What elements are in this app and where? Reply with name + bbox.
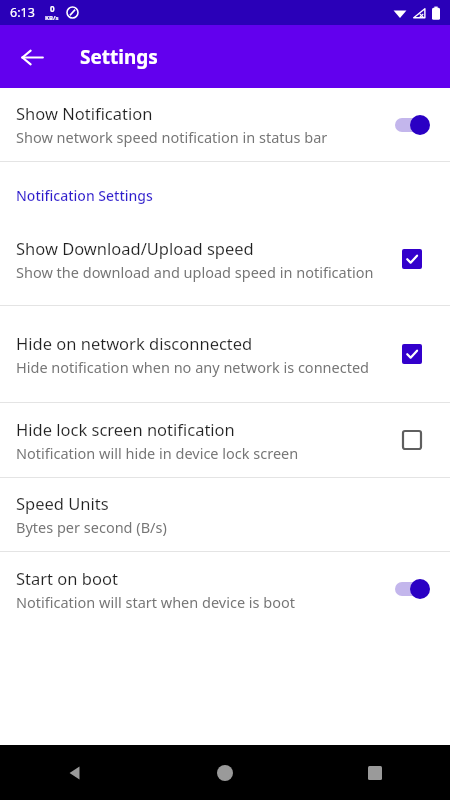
staticText: Notification Settings — [16, 186, 153, 205]
other: Checked — [402, 249, 422, 269]
button[interactable]: Speed Units — [0, 478, 450, 551]
button[interactable]: Home — [150, 745, 300, 800]
staticText: Show network speed notification in statu… — [16, 127, 328, 147]
staticText: 0 — [50, 3, 55, 14]
button[interactable]: Hide on network disconnected — [0, 306, 450, 402]
staticText: 6:13 — [10, 4, 35, 21]
button[interactable]: Show Download/Upload speed — [0, 213, 450, 305]
button[interactable]: Back — [0, 745, 150, 800]
other: Checked — [402, 344, 422, 364]
staticText: Hide lock screen notification — [16, 418, 235, 440]
other: Unchecked — [402, 430, 422, 450]
staticText: Hide on network disconnected — [16, 332, 253, 354]
other: Toggle — [393, 578, 431, 600]
other: Toggle — [393, 114, 431, 136]
button[interactable]: Show Notification — [0, 88, 450, 161]
staticText: Bytes per second (B/s) — [16, 517, 167, 537]
button[interactable]: Toggle — [390, 103, 434, 147]
button[interactable]: Recent apps — [300, 745, 450, 800]
staticText: Show the download and upload speed in no… — [16, 262, 374, 282]
staticText: Show Notification — [16, 102, 153, 124]
staticText: Notification will start when device is b… — [16, 592, 296, 612]
staticText: Show Download/Upload speed — [16, 237, 254, 259]
button[interactable]: Start on boot — [0, 552, 450, 626]
staticText: Notification will hide in device lock sc… — [16, 443, 299, 463]
button[interactable]: Checked — [390, 332, 434, 376]
staticText: KB/s — [45, 14, 59, 22]
button[interactable]: Hide lock screen notification — [0, 403, 450, 477]
button[interactable]: Unchecked — [390, 418, 434, 462]
staticText: Start on boot — [16, 567, 118, 589]
staticText: Hide notification when no any network is… — [16, 357, 370, 377]
button[interactable]: Checked — [390, 237, 434, 281]
button[interactable]: Back — [8, 33, 56, 81]
button[interactable]: Toggle — [390, 567, 434, 611]
staticText: Settings — [80, 44, 158, 70]
staticText: Speed Units — [16, 492, 109, 514]
